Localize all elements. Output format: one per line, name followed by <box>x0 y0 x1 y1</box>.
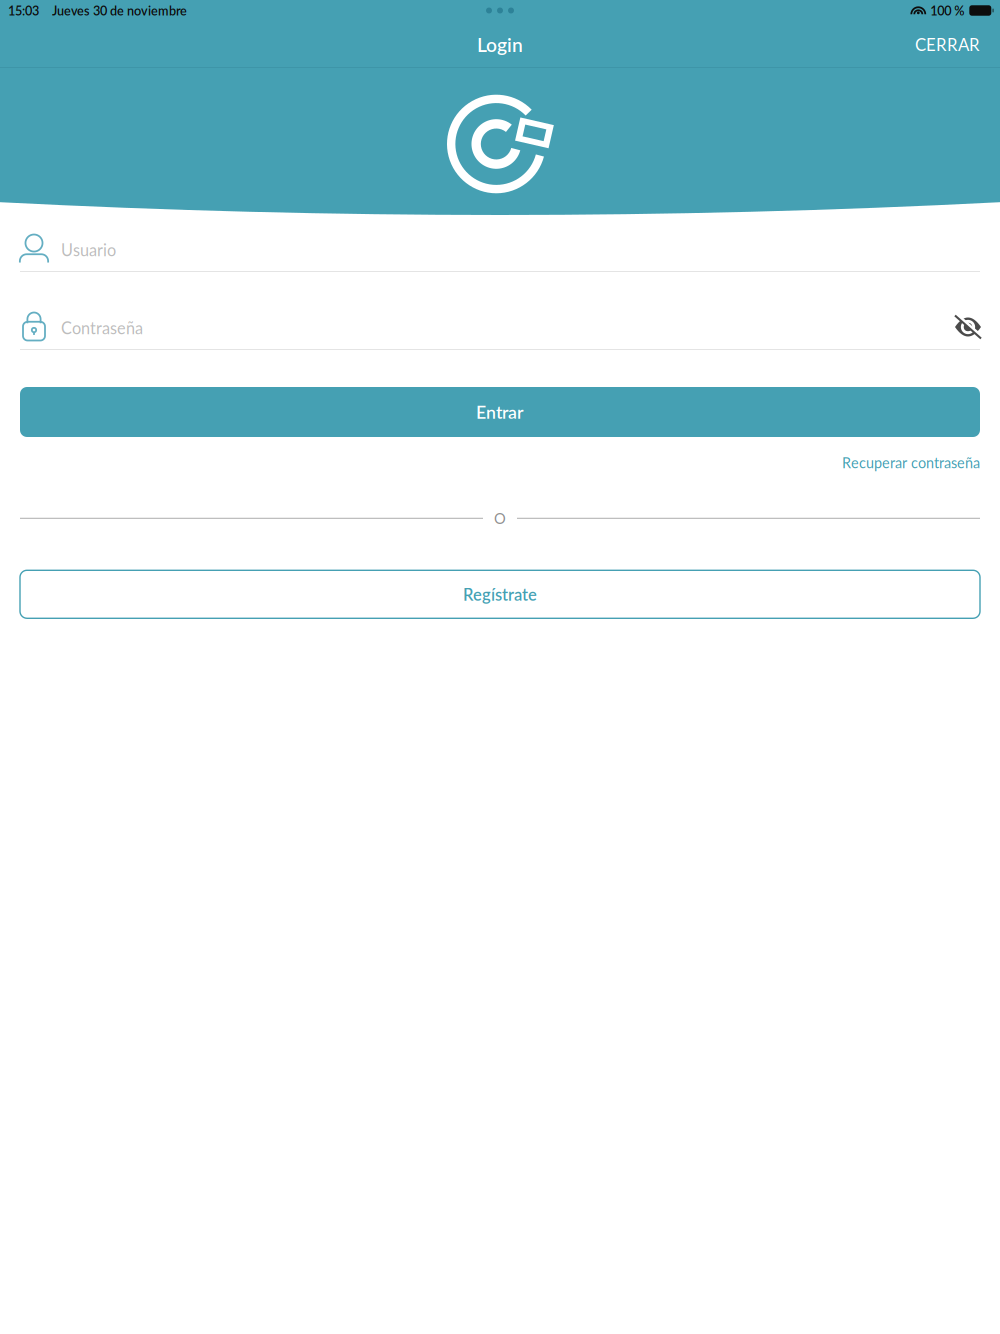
button[interactable]: Regístrate <box>20 570 980 618</box>
staticText: CERRAR <box>915 34 980 55</box>
staticText: Entrar <box>476 401 524 423</box>
staticText: O <box>494 509 506 527</box>
button[interactable]: Entrar <box>20 387 980 437</box>
staticText: Contraseña <box>61 318 143 338</box>
staticText: Regístrate <box>463 584 537 604</box>
staticText: 15:03 <box>8 3 39 18</box>
staticText: Usuario <box>61 240 116 260</box>
staticText: Login <box>477 33 523 56</box>
button[interactable]: Mostrar contraseña <box>952 313 980 339</box>
staticText: Jueves 30 de noviembre <box>52 3 187 18</box>
button[interactable]: CERRAR <box>895 22 1000 67</box>
staticText: Recuperar contraseña <box>842 454 980 471</box>
button[interactable]: Recuperar contraseña <box>842 437 980 473</box>
staticText: 100 % <box>930 3 964 18</box>
